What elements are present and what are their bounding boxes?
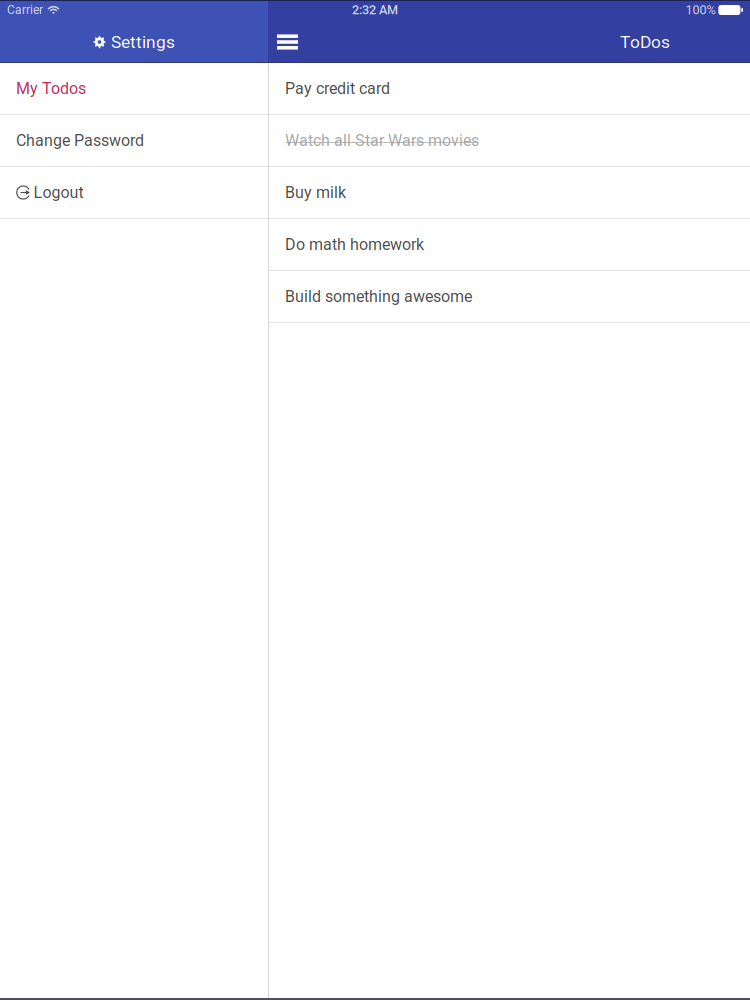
button[interactable]: Settings bbox=[85, 22, 183, 62]
button[interactable]: My Todos bbox=[0, 63, 268, 115]
staticText: Carrier bbox=[7, 3, 43, 17]
button[interactable]: Pay credit card bbox=[269, 63, 750, 115]
button[interactable]: Buy milk bbox=[269, 167, 750, 219]
button[interactable]: Watch all Star Wars movies bbox=[269, 115, 750, 167]
button[interactable]: Logout bbox=[0, 167, 268, 219]
button[interactable]: Do math homework bbox=[269, 219, 750, 271]
button[interactable]: Change Password bbox=[0, 115, 268, 167]
staticText: Build something awesome bbox=[285, 287, 472, 306]
staticText: ToDos bbox=[620, 32, 670, 52]
button[interactable]: Build something awesome bbox=[269, 271, 750, 323]
staticText: Watch all Star Wars movies bbox=[285, 131, 479, 150]
staticText: 100% bbox=[685, 3, 715, 17]
staticText: 2:32 AM bbox=[352, 3, 398, 17]
staticText: Do math homework bbox=[285, 235, 424, 254]
staticText: Buy milk bbox=[285, 183, 346, 202]
staticText: Change Password bbox=[16, 131, 144, 150]
staticText: My Todos bbox=[16, 79, 86, 98]
staticText: Settings bbox=[111, 32, 175, 52]
button[interactable]: Menu bbox=[268, 22, 308, 62]
staticText: Pay credit card bbox=[285, 79, 390, 98]
staticText: Logout bbox=[33, 183, 83, 202]
